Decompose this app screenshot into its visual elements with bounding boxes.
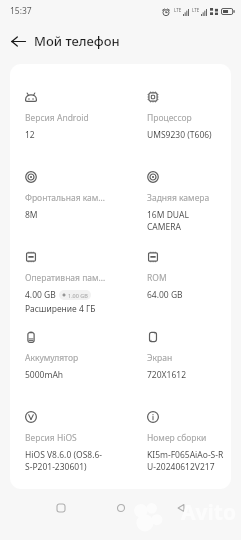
button[interactable]: Версия Android xyxy=(25,91,122,141)
staticText: Задняя камера xyxy=(147,192,210,204)
staticText: HiOS V8.6.0 (OS8.6- S-P201-230601) xyxy=(25,449,103,473)
button[interactable]: Фронтальная кам… xyxy=(25,171,122,221)
button[interactable]: Аккумулятор xyxy=(25,331,122,381)
staticText: 4.00 GB xyxy=(25,289,56,301)
staticText: Мой телефон xyxy=(34,32,120,50)
staticText: 15:37 xyxy=(10,5,32,17)
staticText: LTE xyxy=(174,7,182,13)
button[interactable]: Номер сборки xyxy=(147,411,225,473)
staticText: Расширение 4 ГБ xyxy=(25,303,96,315)
staticText: 5000mAh xyxy=(25,369,64,381)
staticText: Номер сборки xyxy=(147,432,207,444)
button[interactable]: ROM xyxy=(147,251,225,301)
staticText: LTE xyxy=(192,7,200,13)
staticText: Экран xyxy=(147,352,173,364)
staticText: 1.00 GB xyxy=(68,292,88,299)
staticText: UMS9230 (T606) xyxy=(147,129,212,141)
button[interactable]: Оперативная пам… xyxy=(25,251,122,315)
staticText: ROM xyxy=(147,272,167,284)
staticText: Версия HiOS xyxy=(25,432,77,444)
button[interactable]: Экран xyxy=(147,331,225,381)
button[interactable]: Home xyxy=(91,495,151,521)
staticText: Avito xyxy=(181,498,237,527)
button[interactable]: Back xyxy=(151,495,211,521)
staticText: 720X1612 xyxy=(147,369,187,381)
staticText: Фронтальная кам… xyxy=(25,192,106,204)
button[interactable]: Recents xyxy=(31,495,91,521)
staticText: Версия Android xyxy=(25,112,89,124)
staticText: 16M DUAL CAMERA xyxy=(147,209,189,233)
staticText: Аккумулятор xyxy=(25,352,79,364)
button[interactable]: Версия HiOS xyxy=(25,411,122,473)
staticText: KI5m-F065AiAo-S-R U-20240612V217 xyxy=(147,449,224,473)
button[interactable]: Процессор xyxy=(147,91,225,141)
staticText: 8M xyxy=(25,209,38,221)
staticText: Процессор xyxy=(147,112,192,124)
staticText: 64.00 GB xyxy=(147,289,183,301)
staticText: 12 xyxy=(25,129,35,141)
button[interactable]: Задняя камера xyxy=(147,171,225,233)
button[interactable]: Back xyxy=(0,25,33,56)
staticText: Оперативная пам… xyxy=(25,272,106,284)
